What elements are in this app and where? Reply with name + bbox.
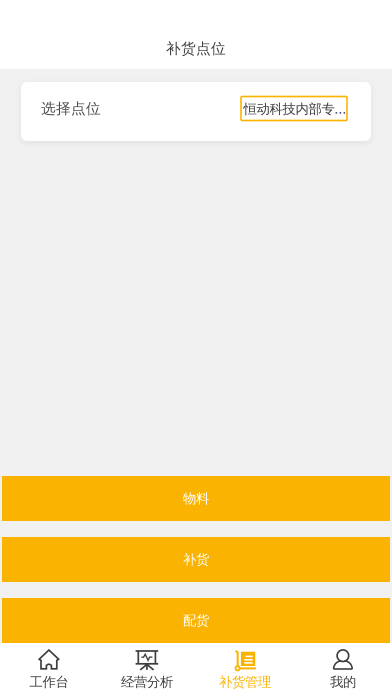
staticText: 恒动科技内部专... <box>243 100 346 117</box>
staticText: 我的 <box>330 674 356 690</box>
button[interactable]: 补货 <box>2 537 390 582</box>
staticText: 补货管理 <box>219 674 271 690</box>
staticText: 补货 <box>183 551 209 568</box>
staticText: 物料 <box>183 490 209 507</box>
staticText: 补货点位 <box>166 39 226 57</box>
button[interactable]: 补货管理 <box>196 644 294 695</box>
staticText: 配货 <box>183 612 209 629</box>
button[interactable]: 我的 <box>294 644 392 695</box>
button[interactable]: 配货 <box>2 598 390 643</box>
staticText: 工作台 <box>29 674 68 690</box>
button[interactable]: 经营分析 <box>98 644 196 695</box>
staticText: 经营分析 <box>121 674 173 690</box>
staticText: 选择点位 <box>41 99 101 117</box>
button[interactable]: 恒动科技内部专... <box>241 96 347 120</box>
button[interactable]: 工作台 <box>0 644 98 695</box>
button[interactable]: 物料 <box>2 476 390 521</box>
